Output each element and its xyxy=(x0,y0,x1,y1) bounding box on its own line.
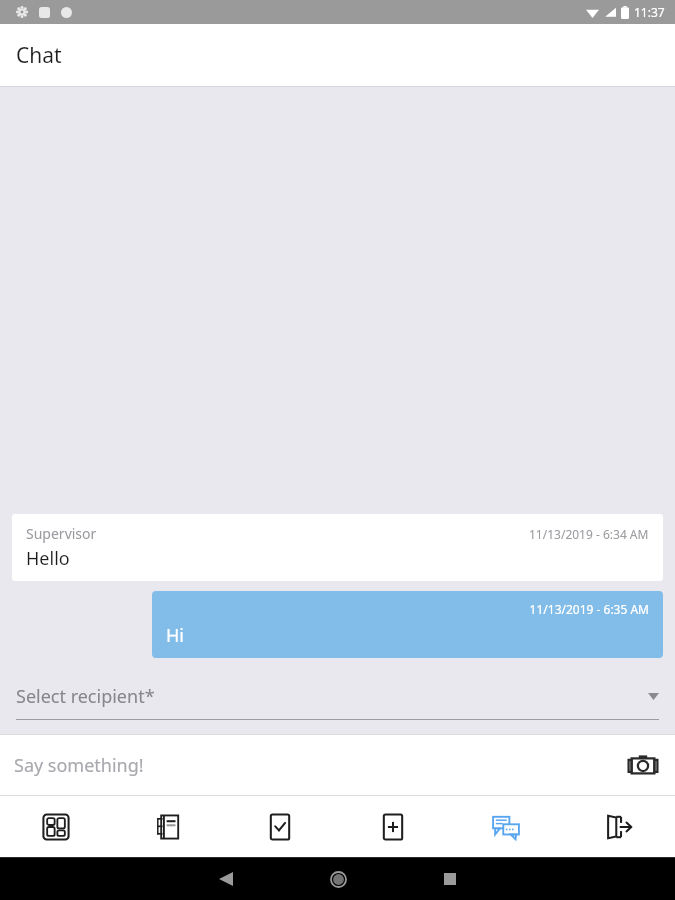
staticText: Say something! xyxy=(14,753,144,778)
button[interactable]: Home xyxy=(282,858,394,900)
staticText: Supervisor xyxy=(26,524,97,543)
button[interactable]: Supervisor xyxy=(12,514,663,581)
button[interactable]: Dashboard xyxy=(0,796,112,858)
button[interactable]: Select recipient* xyxy=(0,684,675,720)
staticText: Chat xyxy=(16,41,62,70)
button[interactable]: Chat xyxy=(449,796,562,858)
staticText: 11/13/2019 - 6:35 AM xyxy=(166,601,649,617)
staticText: Hello xyxy=(26,546,70,571)
button[interactable]: Take photo xyxy=(623,745,663,785)
staticText: 11:37 xyxy=(634,4,665,20)
staticText: Select recipient* xyxy=(16,684,155,709)
staticText: 11/13/2019 - 6:34 AM xyxy=(529,526,649,542)
staticText: Hi xyxy=(166,623,184,648)
button[interactable]: Add xyxy=(336,796,449,858)
button[interactable]: Recents xyxy=(394,858,506,900)
button[interactable]: Journal xyxy=(112,796,224,858)
button[interactable]: Logout xyxy=(562,796,675,858)
button[interactable]: Back xyxy=(170,858,282,900)
button[interactable]: Tasks xyxy=(224,796,336,858)
button[interactable]: 11/13/2019 - 6:35 AM xyxy=(152,591,663,658)
